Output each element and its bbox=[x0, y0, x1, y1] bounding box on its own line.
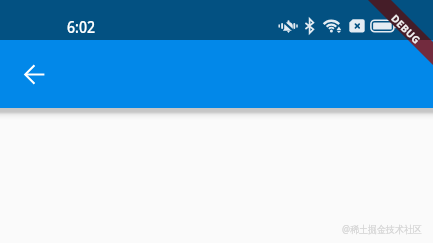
staticText: @稀土掘金技术社区 bbox=[342, 222, 422, 236]
staticText: 6:02 bbox=[67, 16, 95, 38]
button[interactable]: Back bbox=[11, 51, 57, 97]
staticText: DEBUG bbox=[388, 11, 424, 47]
